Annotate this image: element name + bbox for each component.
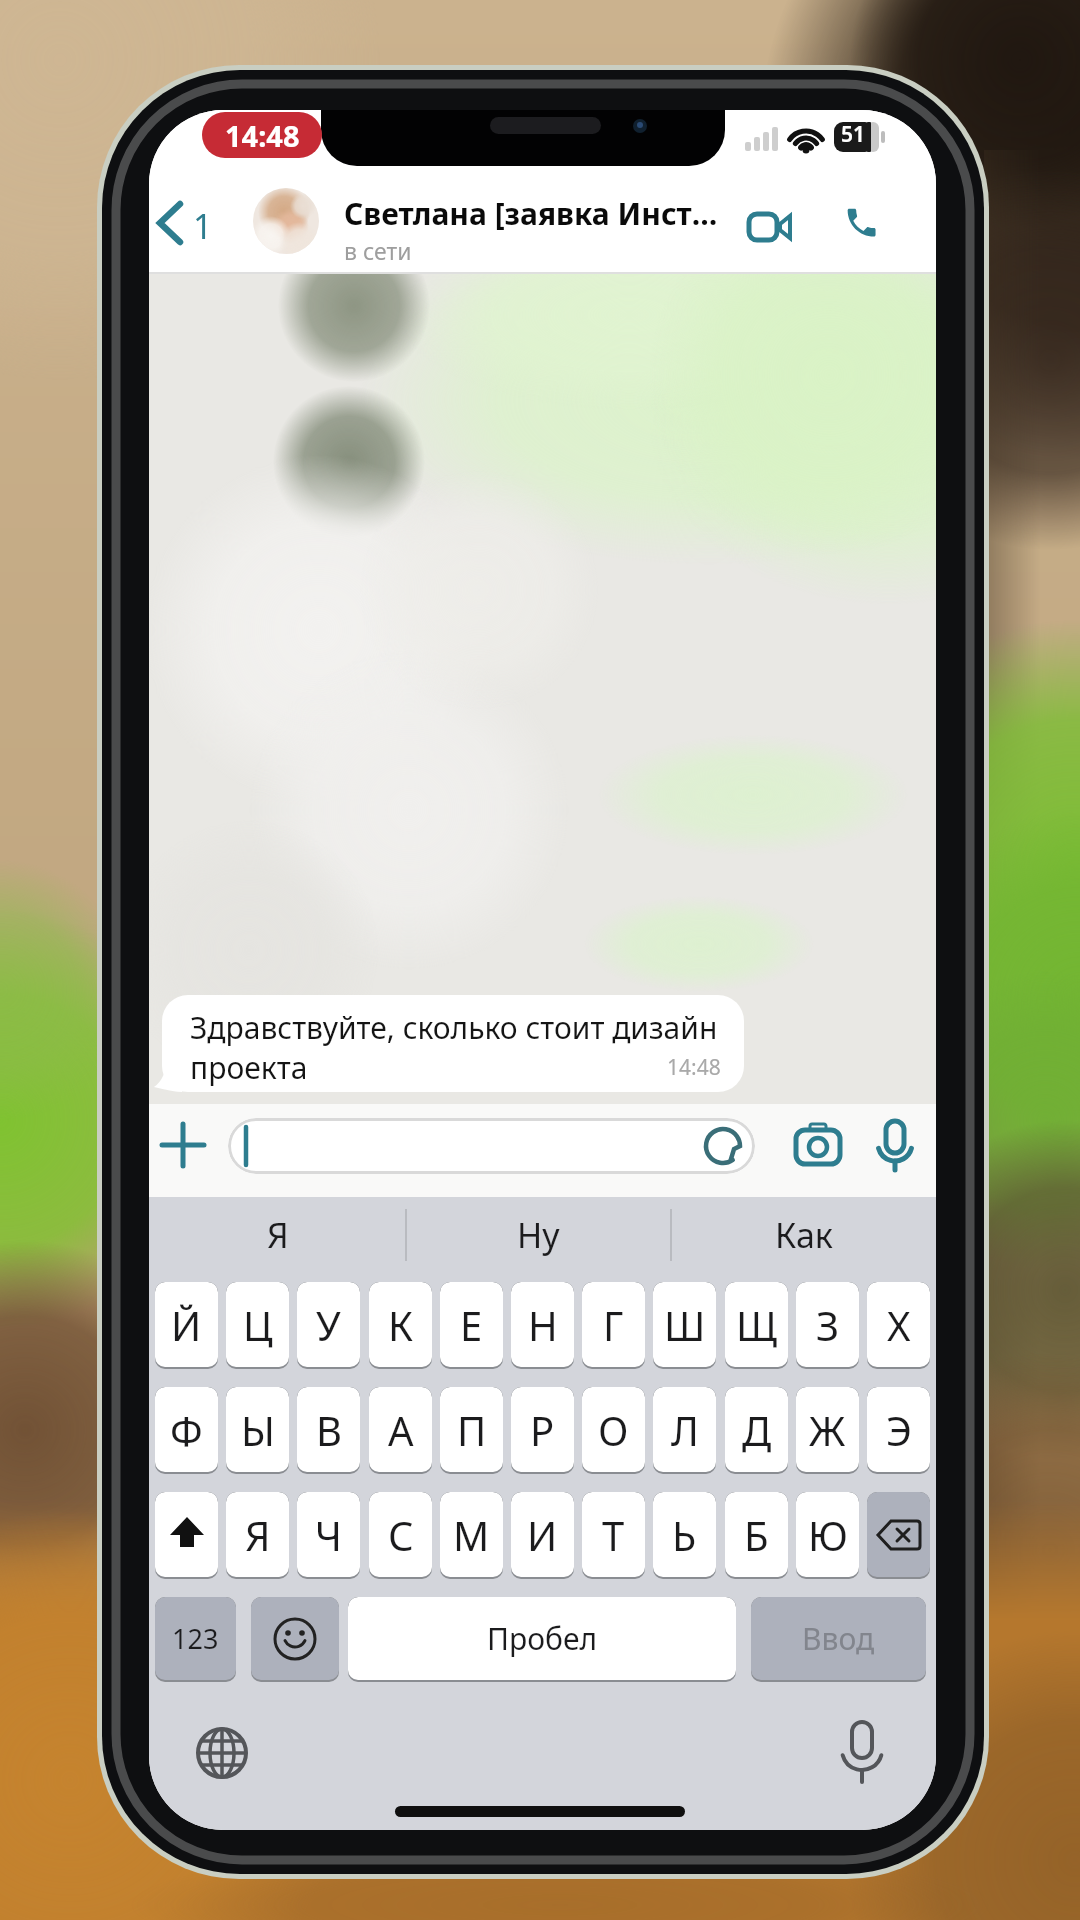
staticText: У	[316, 1298, 341, 1352]
staticText: В	[316, 1403, 342, 1457]
button[interactable]: Й	[155, 1282, 218, 1369]
staticText: Ч	[315, 1508, 342, 1562]
staticText: А	[388, 1403, 414, 1457]
button[interactable]: Г	[582, 1282, 645, 1369]
button[interactable]: Ну	[406, 1197, 671, 1272]
staticText: 51	[841, 120, 866, 148]
button[interactable]: Д	[725, 1387, 788, 1474]
button[interactable]: 14:48	[202, 112, 322, 158]
staticText: Ж	[809, 1403, 846, 1457]
staticText: К	[388, 1298, 413, 1352]
button[interactable]: Л	[653, 1387, 716, 1474]
staticText: Ф	[170, 1403, 203, 1457]
button[interactable]: Н	[511, 1282, 574, 1369]
staticText: С	[388, 1508, 414, 1562]
staticText: Д	[742, 1403, 772, 1457]
button[interactable]	[867, 1492, 930, 1579]
staticText: Как	[775, 1212, 833, 1258]
staticText: Ввод	[802, 1618, 875, 1659]
button[interactable]: З	[796, 1282, 859, 1369]
button[interactable]: И	[511, 1492, 574, 1579]
staticText: П	[457, 1403, 487, 1457]
button[interactable]	[157, 1119, 209, 1171]
button[interactable]	[155, 1492, 218, 1579]
staticText: 123	[172, 1620, 219, 1657]
button[interactable]: Ж	[796, 1387, 859, 1474]
button[interactable]: 123	[155, 1597, 236, 1682]
staticText: 14:48	[667, 1053, 721, 1082]
button[interactable]: Ю	[796, 1492, 859, 1579]
button[interactable]: Ш	[653, 1282, 716, 1369]
button[interactable]	[251, 1597, 339, 1682]
button[interactable]: Х	[867, 1282, 930, 1369]
staticText: Е	[460, 1298, 483, 1352]
button[interactable]: Ы	[226, 1387, 289, 1474]
button[interactable]: Как	[671, 1197, 936, 1272]
staticText: Ш	[664, 1298, 706, 1352]
staticText: О	[598, 1403, 629, 1457]
staticText: проекта	[190, 1047, 308, 1088]
button[interactable]: П	[440, 1387, 503, 1474]
button[interactable]: Ф	[155, 1387, 218, 1474]
staticText: Й	[171, 1298, 202, 1352]
button[interactable]: Ц	[226, 1282, 289, 1369]
button[interactable]: К	[369, 1282, 432, 1369]
button[interactable]: Светлана [заявка Инстаграм]	[344, 193, 729, 237]
staticText: Ю	[808, 1508, 848, 1562]
button[interactable]: Я	[149, 1197, 406, 1272]
button[interactable]	[873, 1118, 917, 1176]
staticText: Л	[671, 1403, 699, 1457]
staticText: 1	[193, 203, 213, 249]
staticText: З	[816, 1298, 840, 1352]
staticText: Щ	[736, 1298, 778, 1352]
button[interactable]: 1	[149, 190, 219, 254]
staticText: М	[453, 1508, 490, 1562]
button[interactable]: Е	[440, 1282, 503, 1369]
button[interactable]	[228, 1118, 755, 1174]
button[interactable]: Пробел	[348, 1597, 736, 1682]
staticText: Ы	[241, 1403, 275, 1457]
staticText: Светлана [заявка Инстаграм]	[344, 193, 729, 234]
staticText: Ц	[243, 1298, 273, 1352]
staticText: Ь	[672, 1508, 697, 1562]
staticText: Р	[530, 1403, 555, 1457]
button[interactable]: А	[369, 1387, 432, 1474]
button[interactable]	[253, 188, 319, 254]
button[interactable]	[747, 207, 797, 247]
button[interactable]: Ч	[297, 1492, 360, 1579]
button[interactable]	[836, 1720, 888, 1788]
staticText: И	[527, 1508, 558, 1562]
button[interactable]: Я	[226, 1492, 289, 1579]
staticText: Б	[744, 1508, 769, 1562]
staticText: Н	[528, 1298, 558, 1352]
staticText: Пробел	[487, 1618, 598, 1659]
button[interactable]	[843, 204, 883, 244]
button[interactable]	[794, 1122, 844, 1168]
button[interactable]: Ь	[653, 1492, 716, 1579]
button[interactable]: В	[297, 1387, 360, 1474]
staticText: Х	[887, 1298, 911, 1352]
staticText: Э	[886, 1403, 912, 1457]
button[interactable]: О	[582, 1387, 645, 1474]
staticText: Я	[245, 1508, 271, 1562]
button[interactable]: Б	[725, 1492, 788, 1579]
staticText: Г	[603, 1298, 624, 1352]
button[interactable]: Р	[511, 1387, 574, 1474]
staticText: Ну	[517, 1212, 560, 1258]
staticText: 14:48	[225, 116, 300, 155]
button[interactable]	[194, 1725, 250, 1781]
button[interactable]: Т	[582, 1492, 645, 1579]
button[interactable]: М	[440, 1492, 503, 1579]
staticText: Я	[267, 1212, 289, 1258]
button[interactable]: С	[369, 1492, 432, 1579]
staticText: Здравствуйте, сколько стоит дизайн	[190, 1007, 718, 1048]
staticText: Т	[602, 1508, 625, 1562]
button[interactable]: Ввод	[751, 1597, 926, 1682]
button[interactable]: Э	[867, 1387, 930, 1474]
button[interactable]: Щ	[725, 1282, 788, 1369]
staticText: в сети	[344, 235, 412, 266]
button[interactable]: У	[297, 1282, 360, 1369]
